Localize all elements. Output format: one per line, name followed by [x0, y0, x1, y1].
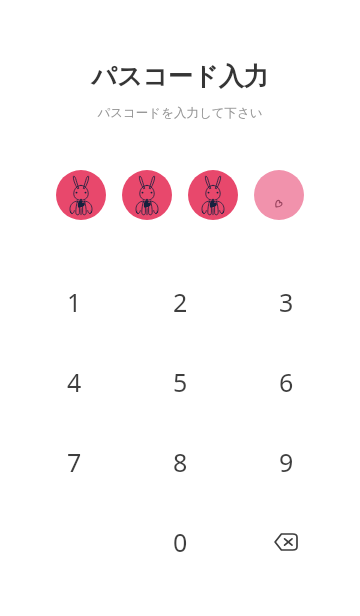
staticText: パスコード入力 — [91, 61, 269, 92]
staticText: 2 — [173, 285, 188, 319]
staticText: 7 — [67, 445, 82, 479]
staticText: 1 — [67, 285, 82, 319]
staticText: 6 — [279, 365, 294, 399]
staticText: 9 — [279, 445, 294, 479]
button[interactable]: 1 — [21, 262, 127, 342]
button[interactable]: 2 — [127, 262, 233, 342]
button[interactable]: 9 — [233, 422, 339, 502]
button[interactable]: 8 — [127, 422, 233, 502]
button[interactable]: Backspace — [233, 502, 339, 582]
button[interactable]: 6 — [233, 342, 339, 422]
button[interactable]: 3 — [233, 262, 339, 342]
staticText: 4 — [67, 365, 82, 399]
staticText: 3 — [279, 285, 294, 319]
button[interactable]: 4 — [21, 342, 127, 422]
other: Backspace — [274, 533, 298, 551]
staticText: 8 — [173, 445, 188, 479]
staticText: パスコードを入力して下さい — [97, 105, 263, 121]
staticText: 0 — [173, 525, 188, 559]
button[interactable]: 0 — [127, 502, 233, 582]
button[interactable]: 5 — [127, 342, 233, 422]
button[interactable]: 7 — [21, 422, 127, 502]
staticText: 5 — [173, 365, 188, 399]
